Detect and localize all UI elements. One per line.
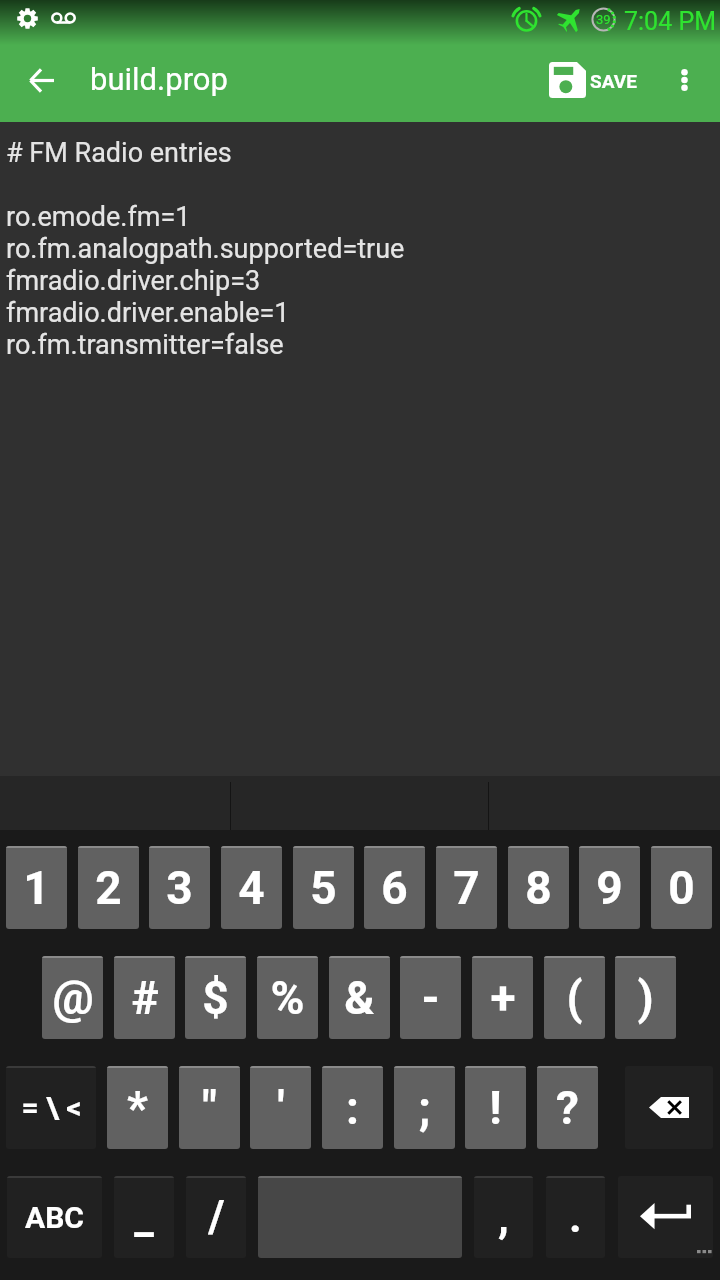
staticText: ro.emode.fm=1 (6, 201, 191, 233)
staticText: 5 (310, 861, 337, 915)
staticText: 7:04 PM (624, 7, 717, 36)
button[interactable]: & (329, 956, 390, 1039)
button[interactable]: " (179, 1066, 240, 1149)
staticText: _ (134, 1191, 154, 1243)
button[interactable]: _ (114, 1176, 174, 1258)
button[interactable]: ? (537, 1066, 598, 1149)
button[interactable]: 2 (78, 846, 139, 929)
button[interactable]: , (474, 1176, 533, 1258)
staticText: : (346, 1081, 359, 1135)
button[interactable]: Navigate up (18, 45, 66, 122)
button[interactable]: 0 (651, 846, 712, 929)
staticText: 9 (596, 861, 623, 915)
staticText: ( (566, 971, 583, 1025)
staticText: . (569, 1191, 582, 1243)
staticText: + (490, 971, 516, 1025)
staticText: 7 (453, 861, 480, 915)
staticText: # FM Radio entries (6, 137, 232, 169)
button[interactable]: ; (394, 1066, 455, 1149)
button[interactable]: $ (185, 956, 246, 1039)
staticText: 1 (23, 861, 50, 915)
staticText: fmradio.driver.enable=1 (6, 297, 290, 329)
button[interactable]: ) (615, 956, 676, 1039)
button[interactable]: 3 (149, 846, 210, 929)
button[interactable]: 1 (6, 846, 67, 929)
button[interactable]: ! (465, 1066, 526, 1149)
staticText: @ (52, 971, 94, 1025)
button[interactable]: - (400, 956, 461, 1039)
button[interactable]: 6 (364, 846, 425, 929)
staticText: 3 (166, 861, 193, 915)
button[interactable]: 7 (436, 846, 497, 929)
button[interactable]: 5 (293, 846, 354, 929)
staticText: , (498, 1191, 509, 1243)
button[interactable]: * (107, 1066, 168, 1149)
staticText: 0 (668, 861, 695, 915)
button[interactable]: SAVE (540, 45, 649, 122)
staticText: 4 (238, 861, 265, 915)
button[interactable]: # (114, 956, 175, 1039)
staticText: SAVE (590, 70, 637, 92)
button[interactable]: Space (258, 1176, 462, 1258)
button[interactable]: ( (544, 956, 605, 1039)
staticText: build.prop (90, 61, 228, 97)
button[interactable]: Delete (625, 1066, 713, 1149)
button[interactable]: More options (660, 45, 714, 122)
staticText: $ (202, 971, 229, 1025)
staticText: ' (277, 1081, 285, 1135)
button[interactable]: + (472, 956, 533, 1039)
button[interactable]: # FM Radio entries (0, 122, 720, 776)
button[interactable]: 9 (579, 846, 640, 929)
button[interactable]: . (546, 1176, 605, 1258)
button[interactable]: % (257, 956, 318, 1039)
staticText: & (344, 971, 375, 1025)
button[interactable]: / (186, 1176, 246, 1258)
staticText: 2 (95, 861, 122, 915)
button[interactable]: Enter (618, 1176, 713, 1258)
staticText: ; (418, 1081, 431, 1135)
staticText: ! (489, 1081, 502, 1135)
button[interactable]: = \ < (6, 1066, 96, 1149)
staticText: = \ < (21, 1090, 82, 1125)
staticText: - (421, 971, 440, 1025)
staticText: * (127, 1081, 148, 1135)
button[interactable]: ' (250, 1066, 311, 1149)
staticText: ro.fm.analogpath.supported=true (6, 233, 405, 265)
staticText: fmradio.driver.chip=3 (6, 265, 261, 297)
button[interactable]: : (322, 1066, 383, 1149)
staticText: 8 (525, 861, 552, 915)
staticText: ) (637, 971, 654, 1025)
staticText: " (202, 1081, 217, 1135)
staticText: ABC (25, 1200, 84, 1235)
staticText: ? (556, 1081, 579, 1135)
staticText: % (270, 971, 305, 1025)
button[interactable]: @ (42, 956, 103, 1039)
staticText: 39 (596, 12, 611, 27)
staticText: 6 (381, 861, 408, 915)
staticText: # (131, 971, 159, 1025)
button[interactable]: 8 (508, 846, 569, 929)
button[interactable]: ABC (7, 1176, 102, 1258)
staticText: ro.fm.transmitter=false (6, 329, 284, 361)
staticText: / (208, 1191, 225, 1243)
button[interactable]: 4 (221, 846, 282, 929)
